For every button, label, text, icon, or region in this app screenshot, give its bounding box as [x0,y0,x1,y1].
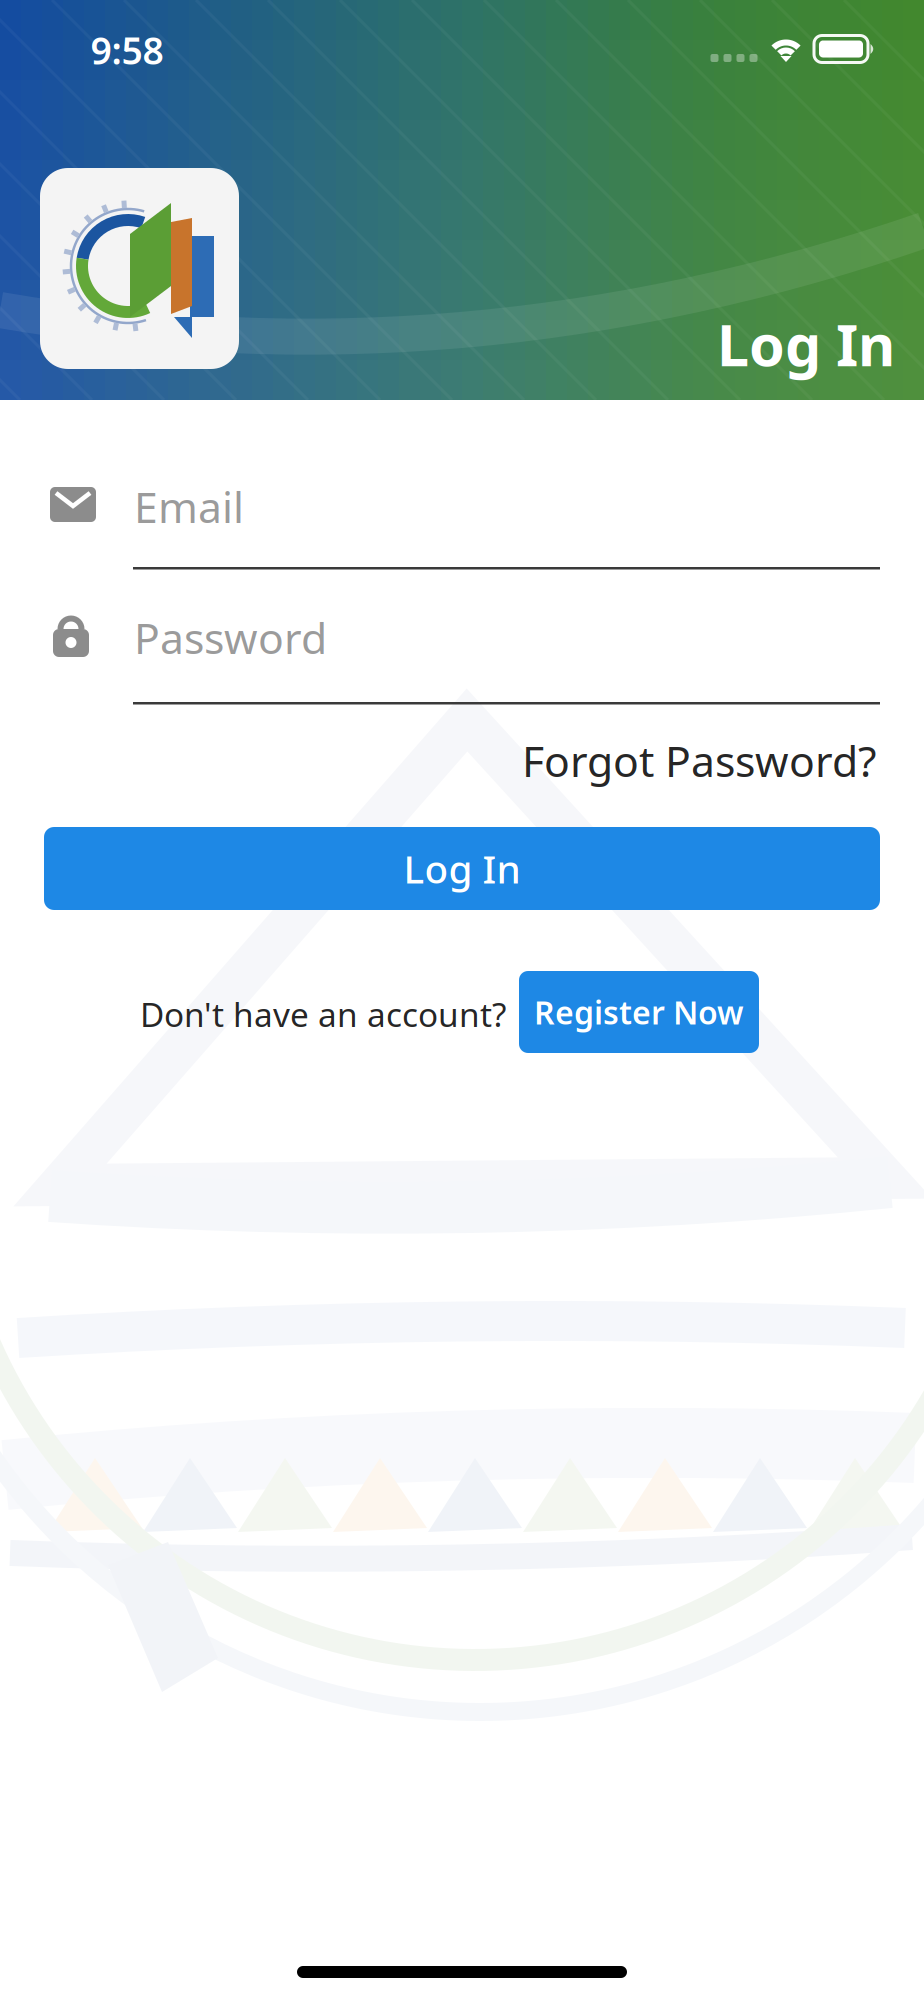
button[interactable]: Email [44,478,880,573]
staticText: Log In [403,843,520,894]
staticText: Register Now [534,991,744,1033]
button[interactable]: Password [44,609,880,707]
button[interactable]: Log In [44,827,880,910]
staticText: 9:58 [90,25,163,75]
staticText: Forgot Password? [522,732,877,789]
staticText: Don't have an account? [140,992,506,1036]
staticText: Log In [717,306,895,382]
button[interactable]: Register Now [519,971,759,1053]
staticText: Password [134,609,327,666]
button[interactable]: Forgot Password? [522,732,877,789]
staticText: Email [134,478,244,535]
